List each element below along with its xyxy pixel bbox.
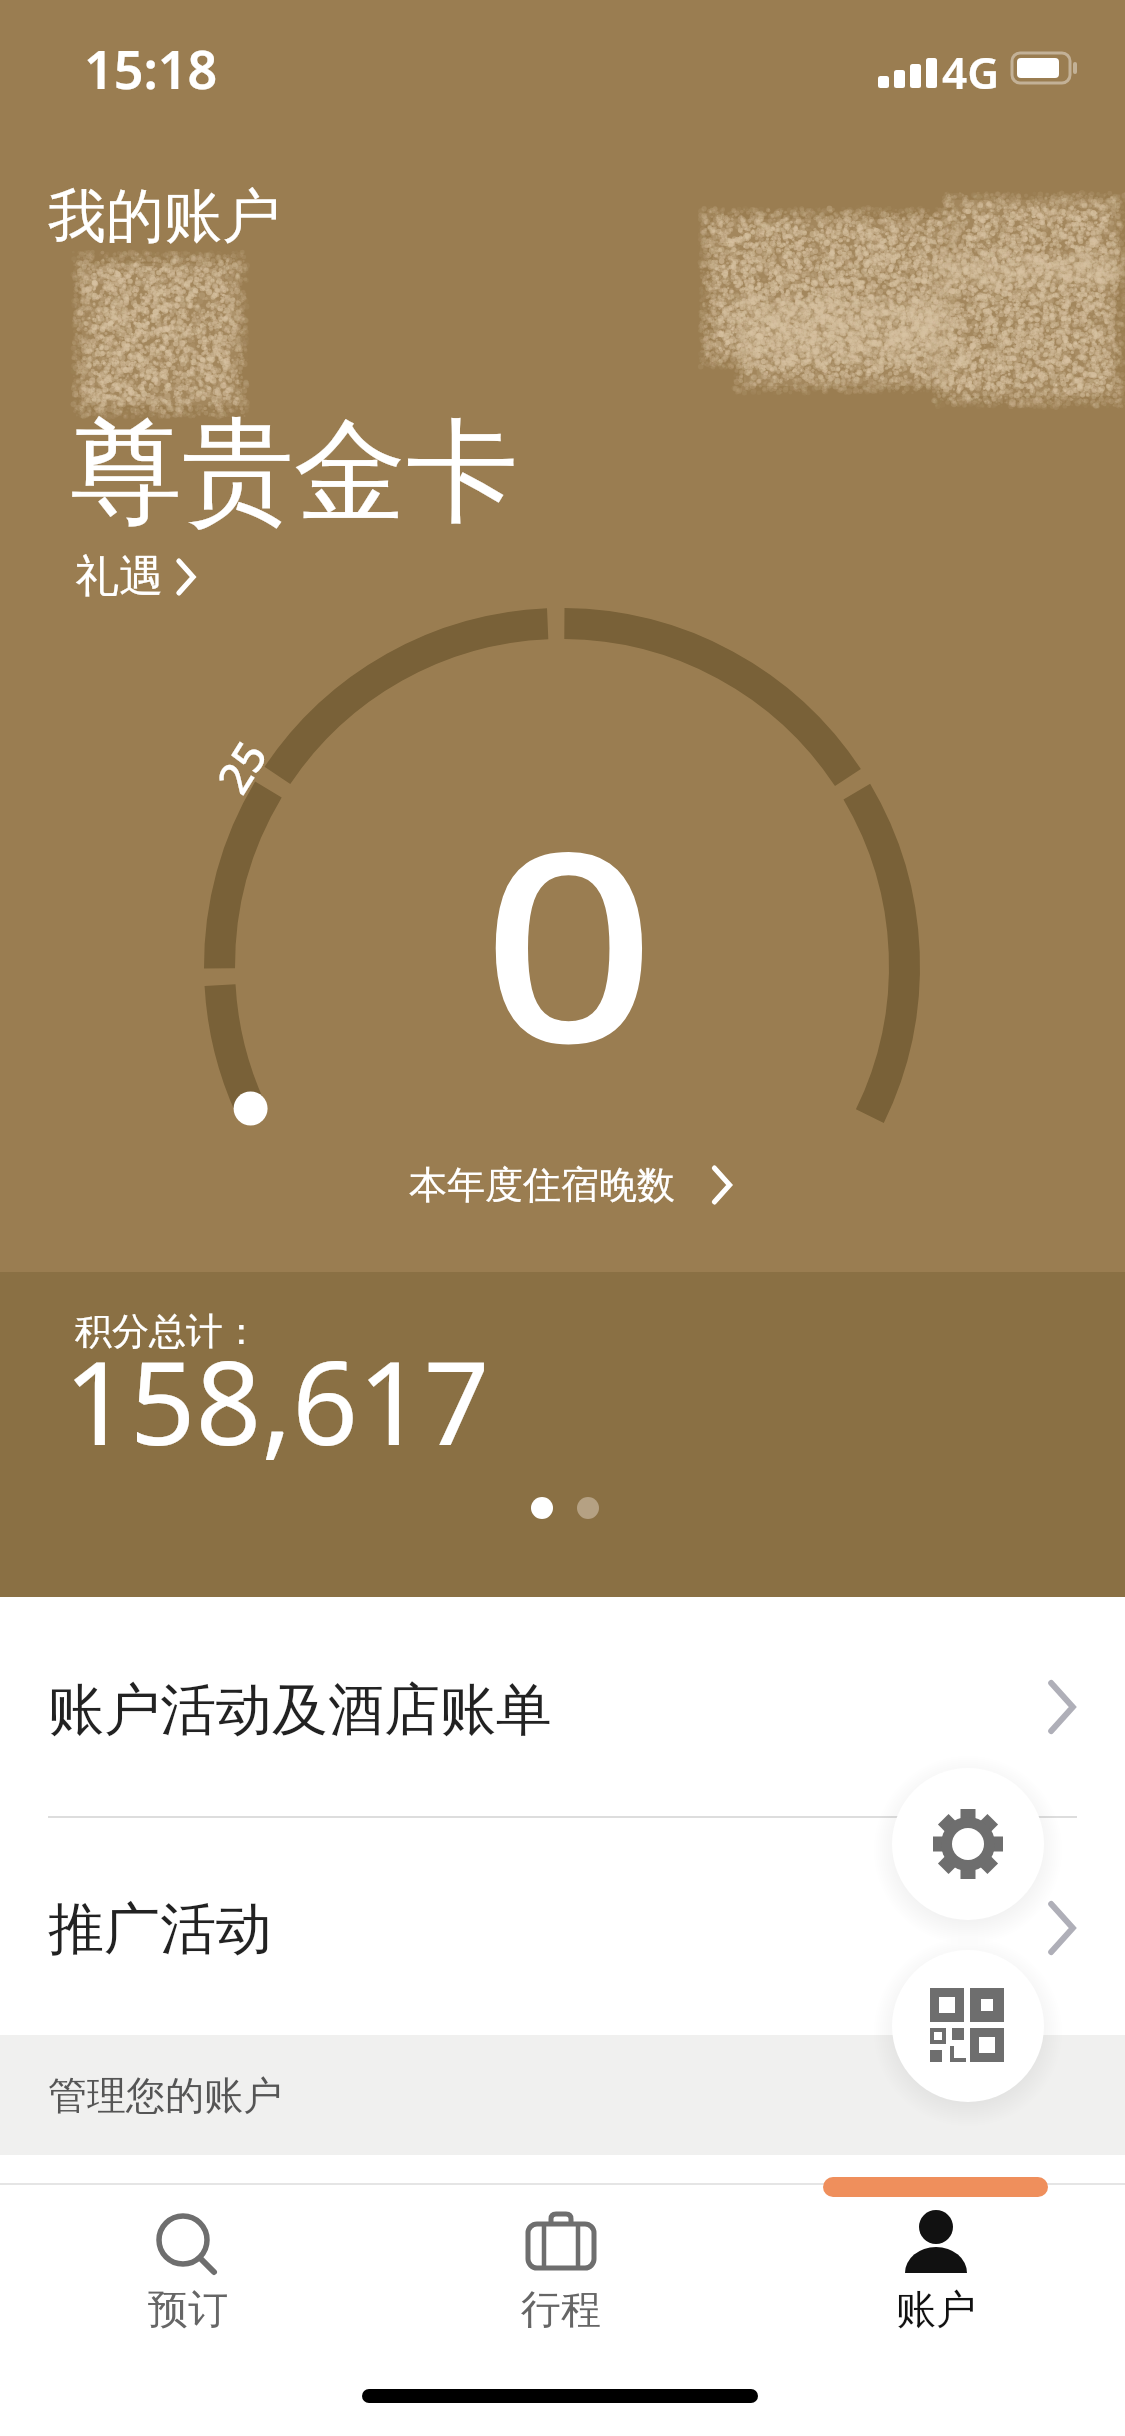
button[interactable] (892, 1768, 1044, 1920)
staticText: 158,617 (64, 1322, 490, 1479)
staticText: 积分总计： (75, 1308, 260, 1355)
staticText: 我的账户 (48, 180, 280, 253)
staticText: 管理您的账户 (48, 2071, 282, 2120)
staticText: 账户 (896, 2284, 976, 2334)
button[interactable]: 预订 (113, 2200, 263, 2345)
button[interactable] (892, 1950, 1044, 2102)
staticText: 预订 (148, 2284, 228, 2334)
staticText: 账户活动及酒店账单 (48, 1675, 552, 1746)
staticText: 25 (202, 729, 280, 804)
button[interactable]: 推广活动 (0, 1818, 1125, 2035)
button[interactable]: 本年度住宿晚数 (10, 1161, 1125, 1209)
button[interactable]: 行程 (486, 2200, 636, 2345)
button[interactable]: 账户活动及酒店账单 (0, 1597, 1125, 1817)
staticText: 行程 (521, 2284, 601, 2334)
staticText: 本年度住宿晚数 (409, 1161, 675, 1209)
staticText: 0 (482, 762, 656, 1082)
button[interactable]: 我的账户 (48, 180, 280, 253)
button[interactable]: 账户 (861, 2200, 1011, 2345)
button[interactable]: 礼遇 (75, 549, 201, 604)
staticText: 4G (942, 42, 1000, 102)
staticText: 尊贵金卡 (70, 402, 518, 543)
staticText: 推广活动 (48, 1894, 272, 1965)
staticText: 礼遇 (75, 549, 163, 604)
staticText: 15:18 (84, 33, 218, 104)
